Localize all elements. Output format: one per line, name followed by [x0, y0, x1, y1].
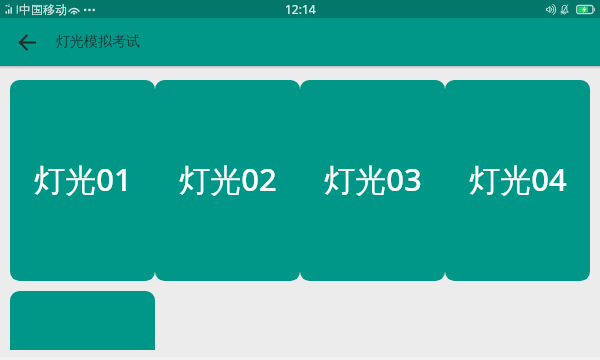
button[interactable]: 灯光03 [300, 80, 445, 281]
staticText: 灯光01 [34, 158, 132, 200]
staticText: 灯光03 [324, 158, 422, 200]
button[interactable]: 灯光01 [10, 80, 155, 281]
button[interactable]: 灯光02 [155, 80, 300, 281]
staticText: 灯光02 [179, 158, 277, 200]
button[interactable]: 灯光04 [445, 80, 590, 281]
staticText: 12:14 [285, 1, 316, 17]
staticText: 灯光模拟考试 [56, 33, 140, 51]
staticText: 中国移动 [19, 2, 67, 17]
staticText: 灯光04 [469, 158, 567, 200]
button[interactable]: Back [9, 24, 45, 60]
button[interactable]: 灯光05 [10, 291, 155, 350]
